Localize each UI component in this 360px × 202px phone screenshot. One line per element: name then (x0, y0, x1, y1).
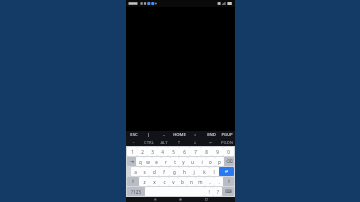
button[interactable]: z (139, 177, 149, 186)
button[interactable]: 3 (147, 147, 157, 156)
staticText: ALT (160, 140, 168, 146)
button[interactable]: j (189, 167, 199, 176)
button[interactable]: v (169, 177, 178, 186)
button[interactable]: ⌨ (222, 187, 234, 196)
button[interactable]: 4 (157, 147, 168, 156)
staticText: m (198, 179, 203, 185)
staticText: PGUP (221, 132, 233, 138)
staticText: k (203, 169, 206, 175)
button[interactable]: y (179, 157, 188, 166)
staticText: END (207, 132, 216, 138)
button[interactable]: f (159, 167, 169, 176)
staticText: h (183, 169, 186, 175)
staticText: ⇧ (227, 179, 231, 184)
button[interactable]: a (131, 167, 140, 176)
staticText: 3 (151, 149, 154, 155)
staticText: w (146, 159, 150, 165)
staticText: d (153, 169, 156, 175)
button[interactable]: t (170, 157, 179, 166)
button[interactable]: ESC (126, 131, 141, 146)
button[interactable]: ?123 (127, 187, 145, 196)
staticText: 5 (172, 149, 175, 155)
button[interactable]: d (149, 167, 159, 176)
staticText: o (209, 159, 212, 165)
button[interactable]: HOME (171, 131, 187, 146)
button[interactable]: o (206, 157, 215, 166)
staticText: t (174, 159, 176, 165)
button[interactable]: 2 (137, 147, 147, 156)
staticText: u (191, 159, 194, 165)
button[interactable]: 1 (127, 147, 137, 156)
button[interactable]: c (159, 177, 169, 186)
staticText: l (213, 169, 215, 175)
button[interactable]: m (196, 177, 205, 186)
button[interactable]: u (188, 157, 197, 166)
button[interactable]: 8 (201, 147, 212, 156)
button[interactable]: - (156, 131, 171, 146)
button[interactable]: ⇥ (127, 157, 136, 166)
button[interactable]: ! (204, 187, 213, 196)
button[interactable]: ⇧ (127, 177, 139, 186)
button[interactable]: b (178, 177, 187, 186)
staticText: n (190, 179, 193, 185)
button[interactable]: n (187, 177, 196, 186)
staticText: | (147, 132, 150, 138)
button[interactable]: ↵ (219, 167, 234, 176)
button[interactable]: s (140, 167, 149, 176)
staticText: 1 (131, 149, 134, 155)
button[interactable]: q (136, 157, 144, 166)
staticText: 8 (205, 149, 208, 155)
button[interactable]: h (179, 167, 189, 176)
staticText: , (209, 179, 211, 185)
staticText: 9 (216, 149, 219, 155)
staticText: ↓ (193, 140, 197, 145)
staticText: a (134, 169, 137, 175)
staticText: q (139, 159, 142, 165)
staticText: ?123 (131, 189, 141, 195)
staticText: z (143, 179, 146, 185)
staticText: ⌨ (225, 189, 232, 194)
button[interactable]: g (169, 167, 179, 176)
staticText: y (182, 159, 185, 165)
button[interactable]: 9 (212, 147, 223, 156)
button[interactable]: w (144, 157, 152, 166)
staticText: i (201, 159, 203, 165)
button[interactable]: ⇧ (223, 177, 234, 186)
staticText: b (181, 179, 184, 185)
staticText: : (194, 132, 196, 138)
button[interactable]: x (149, 177, 159, 186)
staticText: ? (217, 189, 219, 195)
button[interactable]: p (215, 157, 224, 166)
button[interactable]: PGUP (219, 131, 235, 146)
button[interactable]: i (197, 157, 206, 166)
button[interactable]: ⌫ (224, 157, 234, 166)
button[interactable]: END (203, 131, 219, 146)
staticText: ← (209, 140, 213, 145)
staticText: 0 (227, 149, 230, 155)
button[interactable]: r (161, 157, 170, 166)
staticText: ↑ (177, 140, 181, 145)
button[interactable]: | (141, 131, 156, 146)
button[interactable]: 7 (190, 147, 201, 156)
staticText: HOME (173, 132, 186, 138)
button[interactable]: , (205, 177, 214, 186)
staticText: 4 (161, 149, 164, 155)
button[interactable]: 0 (223, 147, 234, 156)
button[interactable]: k (199, 167, 209, 176)
button[interactable]: 6 (179, 147, 190, 156)
button[interactable]: l (209, 167, 219, 176)
staticText: ! (208, 189, 210, 195)
button[interactable]: e (152, 157, 161, 166)
staticText: . (218, 179, 220, 185)
staticText: ⇧ (131, 179, 135, 184)
button[interactable]: . (214, 177, 223, 186)
staticText: p (218, 159, 221, 165)
staticText: r (165, 159, 167, 165)
button[interactable]: : (187, 131, 203, 146)
staticText: 2 (141, 149, 144, 155)
staticText: s (143, 169, 146, 175)
button[interactable]: ? (213, 187, 222, 196)
button[interactable]: 5 (168, 147, 179, 156)
